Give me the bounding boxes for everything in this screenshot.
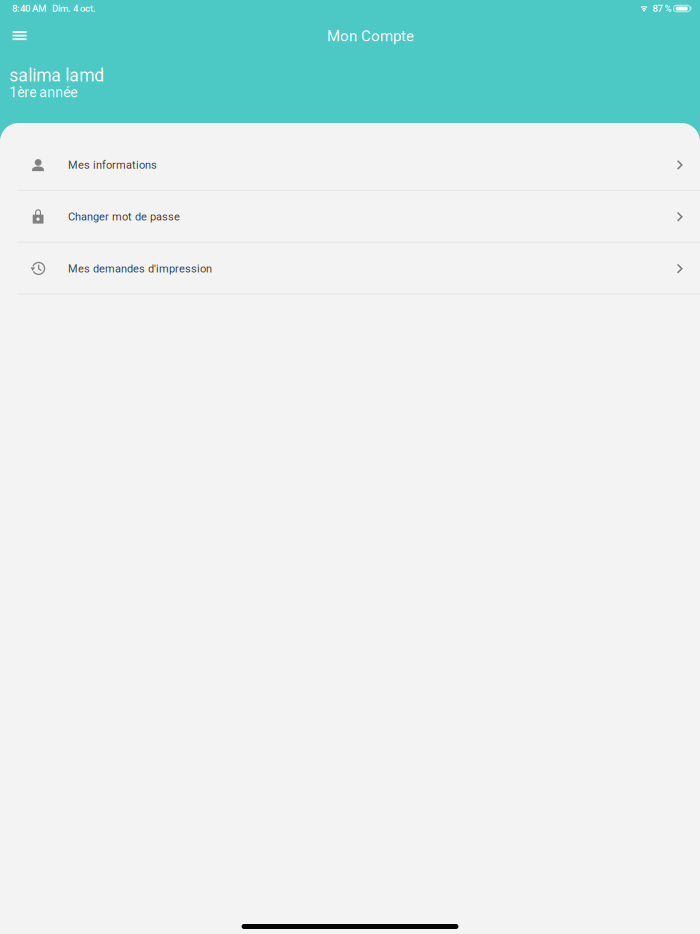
staticText: 8:40 AM bbox=[12, 3, 46, 14]
staticText: 87 % bbox=[653, 3, 672, 14]
staticText: salima lamd bbox=[9, 65, 104, 86]
staticText: Mon Compte bbox=[327, 27, 414, 45]
staticText: Changer mot de passe bbox=[68, 210, 180, 223]
staticText: Mes demandes d'impression bbox=[68, 262, 212, 275]
button[interactable]: Menu bbox=[3, 21, 37, 50]
button[interactable]: Changer mot de passe bbox=[0, 191, 700, 243]
staticText: Dim. 4 oct. bbox=[52, 3, 96, 14]
staticText: 1ère année bbox=[9, 84, 77, 101]
button[interactable]: Mes demandes d'impression bbox=[0, 243, 700, 295]
staticText: Mes informations bbox=[68, 158, 157, 171]
button[interactable]: Mes informations bbox=[0, 139, 700, 191]
